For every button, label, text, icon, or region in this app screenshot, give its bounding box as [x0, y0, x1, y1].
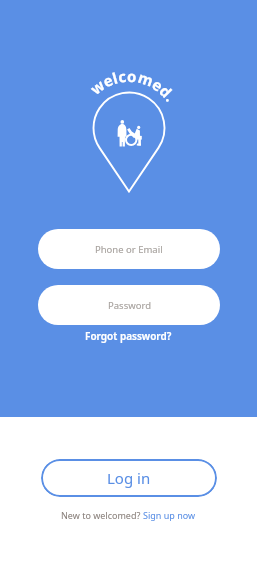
staticText: Sign up now	[143, 509, 196, 521]
button[interactable]: Log in	[41, 459, 217, 497]
staticText: Log in	[107, 468, 151, 488]
staticText: Forgot password?	[85, 329, 172, 343]
button[interactable]: Phone or Email	[38, 229, 220, 269]
button[interactable]: Sign up now	[143, 509, 196, 521]
button[interactable]: Forgot password?	[79, 327, 178, 345]
staticText: Phone or Email	[95, 243, 163, 256]
button[interactable]: Password	[38, 285, 220, 325]
staticText: New to welcomed?	[61, 509, 143, 521]
staticText: Password	[108, 299, 151, 312]
